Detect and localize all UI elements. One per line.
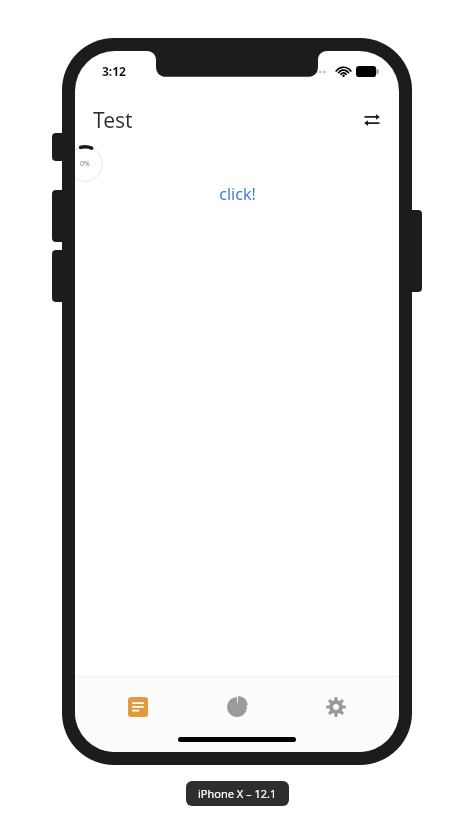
button[interactable]: Statistics: [201, 687, 273, 727]
staticText: Test: [93, 106, 133, 135]
button[interactable]: Swap: [357, 105, 387, 135]
button[interactable]: Settings: [300, 687, 372, 727]
button[interactable]: click!: [213, 177, 262, 211]
staticText: 3:12: [102, 63, 126, 79]
staticText: 0%: [80, 159, 90, 169]
button[interactable]: 0%: [75, 142, 107, 186]
staticText: iPhone X – 12.1: [198, 786, 277, 801]
button[interactable]: Articles: [102, 687, 174, 727]
staticText: click!: [219, 183, 256, 205]
